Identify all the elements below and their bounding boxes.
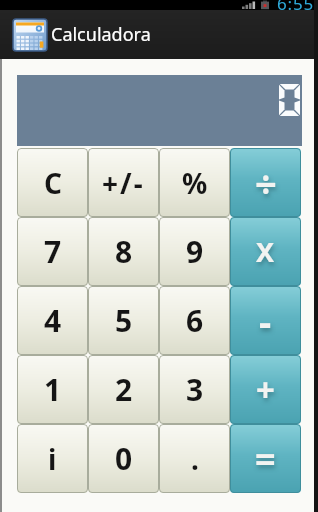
staticText: 9 [186,231,204,272]
staticText: = [255,434,276,483]
staticText: i [48,440,57,478]
staticText: + [256,367,275,412]
staticText: 1 [44,369,62,410]
button[interactable]: 4 [17,286,88,355]
button[interactable]: 3 [159,355,230,424]
staticText: 2 [115,369,133,410]
button[interactable]: + [230,355,301,424]
button[interactable]: X [230,217,301,286]
staticText: % [182,164,208,202]
button[interactable]: ÷ [230,148,301,217]
button[interactable]: +/- [88,148,159,217]
button[interactable]: 5 [88,286,159,355]
staticText: 3 [186,369,204,410]
button[interactable]: . [159,424,230,493]
staticText: - [259,295,272,347]
button[interactable]: Calculadora [0,10,318,59]
button[interactable]: C [17,148,88,217]
staticText: 0 [115,438,133,479]
button[interactable]: 2 [88,355,159,424]
button[interactable]: - [230,286,301,355]
staticText: C [44,164,62,202]
staticText: 7 [44,231,62,272]
button[interactable]: % [159,148,230,217]
staticText: 6 [186,300,204,341]
staticText: X [256,233,275,270]
staticText: 6:55 [277,0,317,10]
button[interactable]: 7 [17,217,88,286]
staticText: 4 [44,300,62,341]
staticText: 5 [115,300,133,341]
button[interactable]: = [230,424,301,493]
staticText: ÷ [255,157,277,209]
staticText: 8 [115,231,133,272]
button[interactable]: 1 [17,355,88,424]
button[interactable]: 6 [159,286,230,355]
button[interactable]: i [17,424,88,493]
staticText: Calculadora [51,22,151,47]
button[interactable]: 9 [159,217,230,286]
button[interactable]: 8 [88,217,159,286]
button[interactable]: 0 [88,424,159,493]
staticText: +/- [102,164,145,202]
staticText: . [191,440,199,478]
